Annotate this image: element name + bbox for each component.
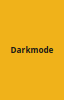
staticText: Darkmode [10, 45, 53, 55]
